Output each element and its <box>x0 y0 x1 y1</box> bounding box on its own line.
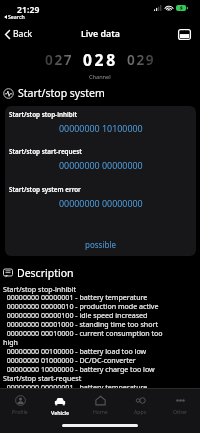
staticText: Other <box>173 408 188 415</box>
button[interactable]: Vehicle <box>40 395 80 416</box>
staticText: Description <box>17 266 74 280</box>
staticText: Start/stop start-request <box>9 147 82 156</box>
staticText: 00000000 00000000 <box>59 159 143 171</box>
staticText: Start/stop stop-inhibit 00000000 0000000… <box>3 284 176 392</box>
staticText: Start/stop stop-inhibit <box>9 110 78 119</box>
staticText: Apps <box>134 408 147 415</box>
button[interactable]: 029 <box>127 50 156 69</box>
button[interactable]: 028 <box>83 49 118 70</box>
button[interactable]: Profile <box>0 395 40 415</box>
staticText: Start/stop system error <box>9 185 81 194</box>
button[interactable]: Other <box>160 395 200 415</box>
button[interactable]: 027 <box>45 50 74 69</box>
staticText: possible <box>85 239 116 250</box>
button[interactable]: Apps <box>120 395 160 415</box>
staticText: Profile <box>12 408 28 415</box>
staticText: 00000000 10100000 <box>59 122 143 134</box>
staticText: Vehicle <box>51 409 70 416</box>
button[interactable]: Back <box>4 27 34 41</box>
staticText: Search <box>8 13 25 20</box>
staticText: Live data <box>81 28 120 40</box>
staticText: Channel <box>89 73 111 81</box>
button[interactable]: Measuring blocks <box>175 27 193 41</box>
staticText: 21:29 <box>17 4 40 16</box>
staticText: 00000000 00000000 <box>59 197 143 209</box>
staticText: Home <box>93 408 108 415</box>
staticText: Back <box>13 28 33 40</box>
staticText: Start/stop system <box>18 86 105 100</box>
button[interactable]: Home <box>80 395 120 415</box>
